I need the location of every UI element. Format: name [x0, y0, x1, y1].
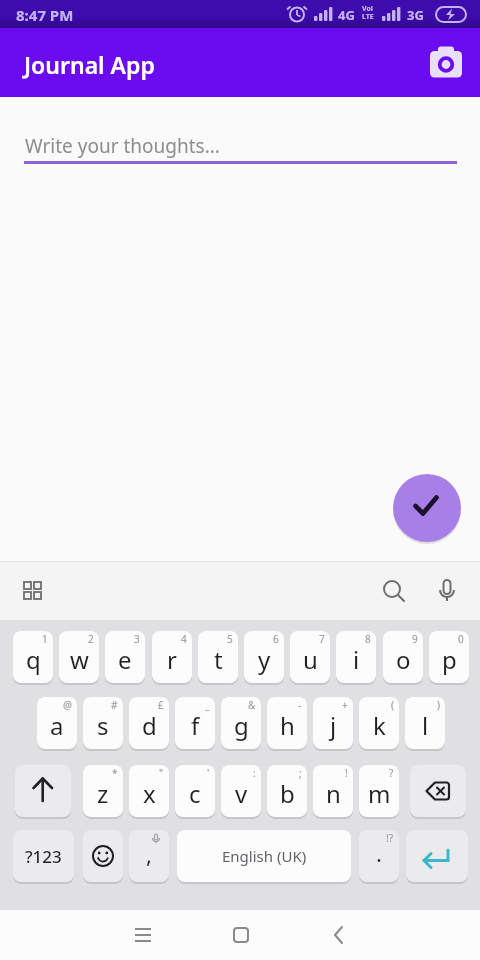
button[interactable]: d — [129, 697, 169, 749]
button[interactable] — [410, 765, 466, 817]
button[interactable]: ?123 — [13, 830, 74, 882]
staticText: p — [442, 643, 457, 676]
staticText: q — [26, 643, 41, 676]
button[interactable] — [217, 916, 265, 954]
button[interactable]: i — [336, 631, 376, 683]
button[interactable] — [83, 830, 123, 882]
staticText: 3G — [407, 6, 424, 24]
staticText: a — [50, 709, 64, 742]
staticText: 4 — [181, 632, 187, 646]
button[interactable]: h — [267, 697, 307, 749]
button[interactable]: p — [429, 631, 469, 683]
button[interactable]: x — [129, 765, 169, 817]
button[interactable]: c — [175, 765, 215, 817]
staticText: y — [258, 643, 271, 676]
staticText: , — [146, 839, 152, 869]
staticText: o — [396, 643, 411, 676]
button[interactable]: e — [105, 631, 145, 683]
staticText: ) — [437, 698, 440, 712]
button[interactable]: English (UK) — [177, 830, 351, 882]
staticText: 4G — [338, 6, 355, 24]
staticText: 7 — [319, 632, 325, 646]
staticText: k — [373, 709, 386, 742]
button[interactable]: z — [83, 765, 123, 817]
staticText: x — [143, 777, 156, 810]
staticText: f — [191, 709, 200, 742]
button[interactable]: f — [175, 697, 215, 749]
staticText: 8:47 PM — [16, 5, 74, 25]
staticText: b — [280, 777, 295, 810]
button[interactable]: b — [267, 765, 307, 817]
button[interactable]: j — [313, 697, 353, 749]
button[interactable] — [406, 830, 468, 882]
staticText: LTE — [362, 12, 374, 22]
staticText: 1 — [42, 632, 48, 646]
staticText: " — [159, 766, 164, 780]
button[interactable]: l — [405, 697, 445, 749]
staticText: 2 — [88, 632, 94, 646]
staticText: l — [422, 709, 429, 742]
staticText: 8 — [365, 632, 371, 646]
button[interactable]: w — [59, 631, 99, 683]
staticText: z — [97, 777, 109, 810]
staticText: English (UK) — [222, 846, 307, 866]
staticText: 0 — [458, 632, 464, 646]
staticText: Vol — [362, 4, 373, 14]
button[interactable] — [12, 571, 52, 611]
staticText: g — [234, 709, 249, 742]
button[interactable]: m — [359, 765, 399, 817]
staticText: * — [112, 766, 118, 780]
staticText: 5 — [227, 632, 233, 646]
button[interactable]: o — [383, 631, 423, 683]
button[interactable] — [374, 571, 414, 611]
button[interactable]: s — [83, 697, 123, 749]
staticText: : — [253, 766, 256, 780]
button[interactable]: q — [13, 631, 53, 683]
button[interactable] — [428, 571, 468, 611]
staticText: # — [111, 698, 118, 712]
staticText: t — [214, 643, 223, 676]
button[interactable]: v — [221, 765, 261, 817]
staticText: !? — [386, 831, 394, 845]
button[interactable]: g — [221, 697, 261, 749]
staticText: s — [97, 709, 109, 742]
staticText: r — [167, 643, 177, 676]
staticText: ' — [207, 766, 210, 780]
staticText: _ — [205, 698, 210, 712]
button[interactable]: r — [152, 631, 192, 683]
button[interactable]: , — [129, 830, 169, 882]
staticText: ! — [345, 766, 348, 780]
staticText: ?123 — [25, 845, 62, 868]
button[interactable]: y — [244, 631, 284, 683]
staticText: - — [298, 698, 302, 712]
staticText: . — [376, 838, 382, 868]
button[interactable] — [119, 916, 167, 954]
staticText: ? — [389, 766, 394, 780]
button[interactable]: n — [313, 765, 353, 817]
button[interactable] — [15, 765, 71, 817]
button[interactable] — [315, 916, 363, 954]
staticText: c — [189, 777, 201, 810]
button[interactable]: u — [290, 631, 330, 683]
staticText: n — [326, 777, 341, 810]
staticText: e — [118, 643, 132, 676]
button[interactable]: . — [359, 830, 399, 882]
button[interactable] — [393, 474, 461, 542]
staticText: d — [142, 709, 157, 742]
button[interactable]: k — [359, 697, 399, 749]
staticText: & — [248, 698, 256, 712]
staticText: 9 — [412, 632, 418, 646]
staticText: m — [368, 777, 391, 810]
staticText: 6 — [273, 632, 279, 646]
staticText: v — [235, 777, 248, 810]
button[interactable]: a — [37, 697, 77, 749]
staticText: w — [70, 643, 89, 676]
staticText: @ — [63, 698, 72, 712]
staticText: Write your thoughts... — [25, 133, 220, 159]
staticText: u — [303, 643, 318, 676]
staticText: ( — [391, 698, 394, 712]
button[interactable]: t — [198, 631, 238, 683]
button[interactable] — [422, 40, 470, 88]
staticText: + — [342, 698, 348, 712]
